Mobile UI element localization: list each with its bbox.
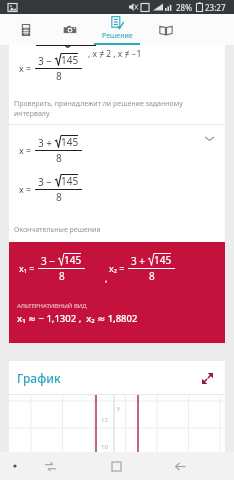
staticText: 10 <box>101 443 108 451</box>
staticText: 145 <box>61 135 79 149</box>
button[interactable]: Back <box>171 457 189 475</box>
staticText: 3 + <box>131 254 146 268</box>
staticText: y <box>117 404 121 412</box>
staticText: Проверить, принадлежит ли решение заданн… <box>14 99 183 119</box>
staticText: График <box>17 370 61 386</box>
staticText: 23:27 <box>205 2 226 13</box>
button[interactable]: Fullscreen <box>197 368 217 388</box>
staticText: 8 <box>56 190 62 204</box>
staticText: 8 <box>56 69 62 83</box>
staticText: x₁ = <box>19 262 35 274</box>
staticText: 3 − <box>41 254 56 268</box>
staticText: 8 <box>59 269 65 283</box>
staticText: x₁ ≈ − 1,1302 , x₂ ≈ 1,8802 <box>17 312 138 325</box>
staticText: 12 <box>101 416 108 424</box>
staticText: 3 − <box>38 54 53 68</box>
button[interactable]: Textbook <box>146 14 186 45</box>
staticText: 8 <box>149 269 155 283</box>
staticText: x = <box>19 183 32 195</box>
staticText: 3 + <box>38 136 53 150</box>
button[interactable]: Решение <box>92 14 142 45</box>
staticText: x₂ = <box>109 262 125 274</box>
button[interactable]: Recents <box>107 457 125 475</box>
staticText: Решение <box>102 31 133 41</box>
staticText: АЛЬТЕРНАТИВНЫЙ ВИД <box>17 302 87 310</box>
staticText: , <box>105 272 108 284</box>
staticText: Окончательные решения <box>14 225 101 235</box>
staticText: 8 <box>56 151 62 165</box>
staticText: 3 − <box>38 175 53 189</box>
staticText: 28% <box>176 2 192 13</box>
button[interactable]: Camera <box>50 14 90 45</box>
staticText: x = <box>19 144 32 156</box>
button[interactable]: Assistant <box>6 457 24 475</box>
staticText: 145 <box>61 174 79 188</box>
button[interactable]: Calculator <box>2 14 50 45</box>
staticText: x = <box>19 62 32 74</box>
staticText: , x ≠ 2 , x ≠ −1 <box>88 48 142 60</box>
staticText: 145 <box>64 253 82 267</box>
staticText: 145 <box>61 53 79 67</box>
button[interactable]: Expand <box>199 128 219 148</box>
staticText: 145 <box>154 253 172 267</box>
button[interactable]: Keyboard <box>41 457 59 475</box>
